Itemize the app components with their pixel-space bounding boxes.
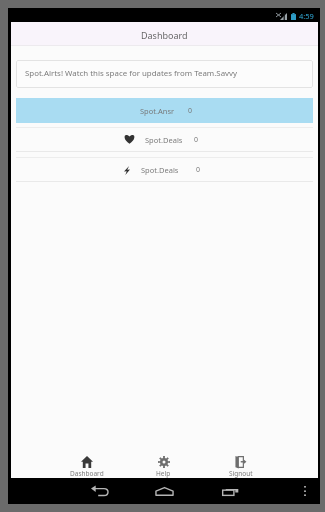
staticText: Help xyxy=(156,469,171,478)
staticText: Spot.Deals xyxy=(141,165,179,175)
button[interactable]: Spot.Ansr xyxy=(16,98,313,123)
button[interactable]: Dashboard xyxy=(48,446,125,478)
staticText: Spot.Alrts! Watch this space for updates… xyxy=(25,68,238,79)
staticText: Spot.Deals xyxy=(145,135,183,145)
button[interactable]: Signout xyxy=(202,446,279,478)
staticText: 0 xyxy=(194,135,199,145)
staticText: Spot.Ansr xyxy=(140,106,175,116)
button[interactable]: Help xyxy=(125,446,202,478)
staticText: 4:59 xyxy=(299,11,314,21)
staticText: Dashboard xyxy=(141,29,188,41)
button[interactable]: Home xyxy=(155,484,174,498)
button[interactable]: More options xyxy=(299,484,311,498)
staticText: 0 xyxy=(188,106,193,116)
staticText: Signout xyxy=(229,469,253,478)
button[interactable]: Recent apps xyxy=(221,484,240,498)
button[interactable]: Back xyxy=(90,484,109,498)
button[interactable]: Spot.Deals xyxy=(11,128,318,151)
staticText: 0 xyxy=(196,165,201,175)
staticText: Dashboard xyxy=(70,469,104,478)
button[interactable]: Spot.Deals xyxy=(11,158,318,181)
button[interactable]: Spot.Alrts! Watch this space for updates… xyxy=(16,60,313,88)
